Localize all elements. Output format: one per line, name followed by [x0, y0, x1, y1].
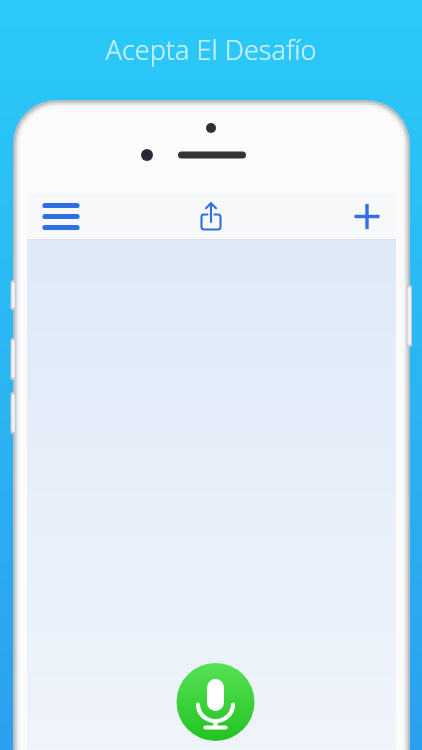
- button[interactable]: Add: [343, 195, 391, 239]
- button[interactable]: Share: [187, 195, 235, 239]
- button[interactable]: Menu: [36, 195, 86, 239]
- staticText: Acepta El Desafío: [0, 31, 422, 68]
- button[interactable]: Record voice: [176, 663, 255, 742]
